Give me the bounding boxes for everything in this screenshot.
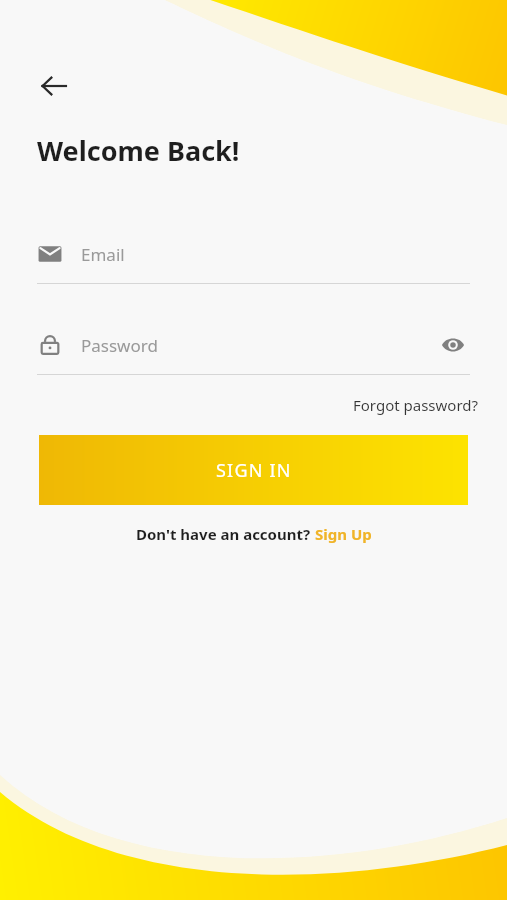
staticText: Don't have an account? xyxy=(136,524,315,544)
button[interactable]: Email xyxy=(37,231,470,277)
staticText: Password xyxy=(81,334,158,357)
staticText: SIGN IN xyxy=(216,458,292,483)
staticText: Sign Up xyxy=(315,524,372,544)
staticText: Email xyxy=(81,243,125,266)
button[interactable]: Sign Up xyxy=(315,524,372,544)
button[interactable]: SIGN IN xyxy=(39,435,468,505)
button[interactable]: Forgot password? xyxy=(351,391,481,419)
button[interactable]: Password xyxy=(37,322,470,368)
staticText: Welcome Back! xyxy=(37,132,240,169)
button[interactable]: Show password xyxy=(436,328,470,362)
button[interactable]: Back xyxy=(30,62,78,110)
staticText: Forgot password? xyxy=(353,395,479,415)
